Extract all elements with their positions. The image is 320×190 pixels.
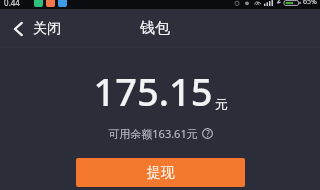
button[interactable]: Help [202, 128, 213, 139]
staticText: 可用余额163.61元 [108, 126, 198, 141]
button[interactable]: Back [0, 13, 73, 45]
staticText: 0.44 [4, 0, 20, 6]
staticText: 钱包 [140, 19, 170, 38]
staticText: 65% [303, 0, 317, 6]
staticText: ? [206, 128, 210, 139]
staticText: 提现 [147, 164, 175, 182]
staticText: 关闭 [33, 20, 61, 38]
other: Back [13, 21, 24, 37]
button[interactable]: 提现 [76, 158, 245, 187]
staticText: 175.15 [93, 65, 213, 117]
staticText: 元 [215, 96, 228, 112]
